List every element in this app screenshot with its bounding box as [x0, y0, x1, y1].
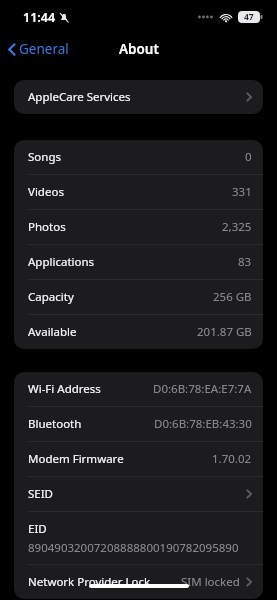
staticText: SIM locked	[181, 574, 240, 590]
button[interactable]: Wi-Fi Address	[14, 372, 263, 406]
staticText: Videos	[28, 184, 64, 200]
button[interactable]: Videos	[14, 175, 263, 209]
button[interactable]: Bluetooth	[14, 407, 263, 441]
button[interactable]: Available	[14, 315, 263, 349]
staticText: 1.70.02	[212, 451, 252, 467]
staticText: About	[119, 40, 159, 58]
staticText: Bluetooth	[28, 416, 82, 432]
button[interactable]: EID	[14, 512, 263, 564]
staticText: 89049032007208888800190782095890	[28, 540, 239, 556]
staticText: D0:6B:78:EA:E7:7A	[153, 381, 252, 397]
staticText: D0:6B:78:EB:43:30	[154, 416, 252, 432]
staticText: AppleCare Services	[28, 89, 131, 105]
staticText: Available	[28, 324, 77, 340]
staticText: Wi-Fi Address	[28, 381, 101, 397]
staticText: Songs	[28, 149, 61, 165]
button[interactable]: Photos	[14, 210, 263, 244]
staticText: 83	[238, 254, 252, 270]
other: Open	[246, 489, 252, 499]
button[interactable]: AppleCare Services	[14, 80, 263, 114]
staticText: 47	[244, 11, 254, 23]
staticText: Applications	[28, 254, 95, 270]
button[interactable]: General	[0, 36, 77, 62]
button[interactable]: Network Provider Lock	[14, 565, 263, 599]
staticText: 201.87 GB	[197, 324, 252, 340]
staticText: EID	[28, 521, 47, 537]
button[interactable]: Modem Firmware	[14, 442, 263, 476]
staticText: Capacity	[28, 289, 74, 305]
other: Open	[246, 92, 252, 102]
button[interactable]: Capacity	[14, 280, 263, 314]
staticText: Modem Firmware	[28, 451, 124, 467]
staticText: SEID	[28, 486, 54, 502]
staticText: Network Provider Lock	[28, 574, 151, 590]
button[interactable]: Songs	[14, 140, 263, 174]
other: Open	[246, 577, 252, 587]
staticText: 0	[245, 149, 252, 165]
button[interactable]: SEID	[14, 477, 263, 511]
staticText: Photos	[28, 219, 66, 235]
staticText: 331	[232, 184, 252, 200]
staticText: 11:44	[23, 9, 56, 26]
staticText: 256 GB	[213, 289, 252, 305]
staticText: 2,325	[222, 219, 252, 235]
button[interactable]: Applications	[14, 245, 263, 279]
staticText: General	[19, 40, 69, 58]
